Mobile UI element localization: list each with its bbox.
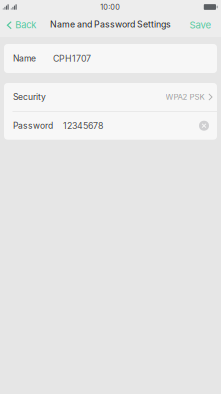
staticText: 12345678 <box>63 120 103 131</box>
staticText: Name <box>13 53 36 64</box>
button[interactable]: Name <box>4 44 217 73</box>
staticText: Password <box>13 120 53 131</box>
staticText: Back <box>15 19 36 31</box>
staticText: Security <box>13 92 46 102</box>
button[interactable]: Back <box>0 14 40 37</box>
button[interactable]: Security <box>4 83 217 111</box>
staticText: Name and Password Settings <box>50 19 171 30</box>
staticText: 10:00 <box>100 3 120 11</box>
staticText: WPA2 PSK <box>165 92 204 102</box>
staticText: Save <box>189 19 211 31</box>
button[interactable]: Password <box>4 112 195 140</box>
staticText: CPH1707 <box>53 53 91 64</box>
button[interactable]: Clear password <box>195 112 217 140</box>
button[interactable]: Save <box>184 14 221 37</box>
